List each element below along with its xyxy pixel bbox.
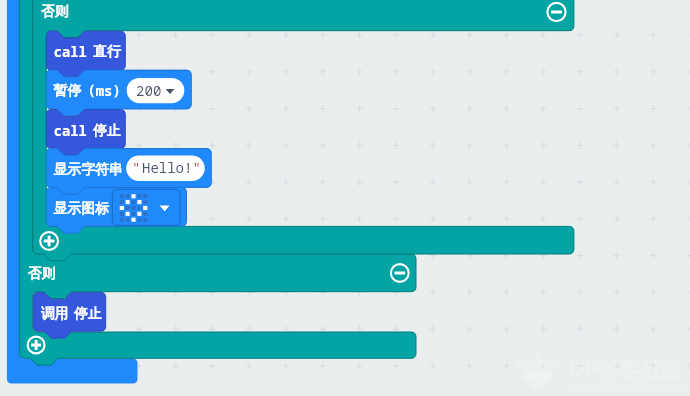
button[interactable]: 否则 branch header xyxy=(33,0,574,31)
button[interactable]: Collapse else branch xyxy=(547,3,566,22)
button[interactable]: 显示字符串 Hello! xyxy=(46,148,211,187)
button[interactable]: Add statement to else branch xyxy=(27,336,46,355)
button[interactable]: call 直行 xyxy=(46,31,125,70)
button[interactable]: Duration value 200 xyxy=(126,78,184,103)
other: Block programming workspace xyxy=(0,0,690,396)
button[interactable]: Text value Hello! xyxy=(126,155,205,181)
button[interactable]: call 停止 xyxy=(46,109,125,148)
button[interactable]: 否则 branch header xyxy=(20,254,417,292)
button[interactable]: 显示图标 xyxy=(46,187,186,226)
button[interactable]: Icon pattern picker xyxy=(112,189,180,225)
button[interactable]: 调用 停止 xyxy=(33,292,106,331)
button[interactable]: Add statement to else branch xyxy=(40,232,59,251)
button[interactable]: 暂停 (ms) 200 xyxy=(46,70,191,109)
button[interactable]: Collapse else branch xyxy=(390,264,409,283)
